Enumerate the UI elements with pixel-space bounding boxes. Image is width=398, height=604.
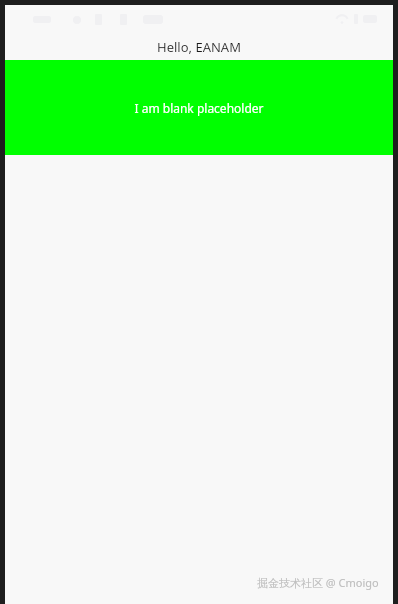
staticText: Hello, EANAM [157, 38, 241, 56]
button[interactable]: I am blank placeholder [5, 60, 393, 155]
staticText: 掘金技术社区 @ Cmoigo [257, 575, 379, 590]
staticText: I am blank placeholder [134, 100, 264, 116]
